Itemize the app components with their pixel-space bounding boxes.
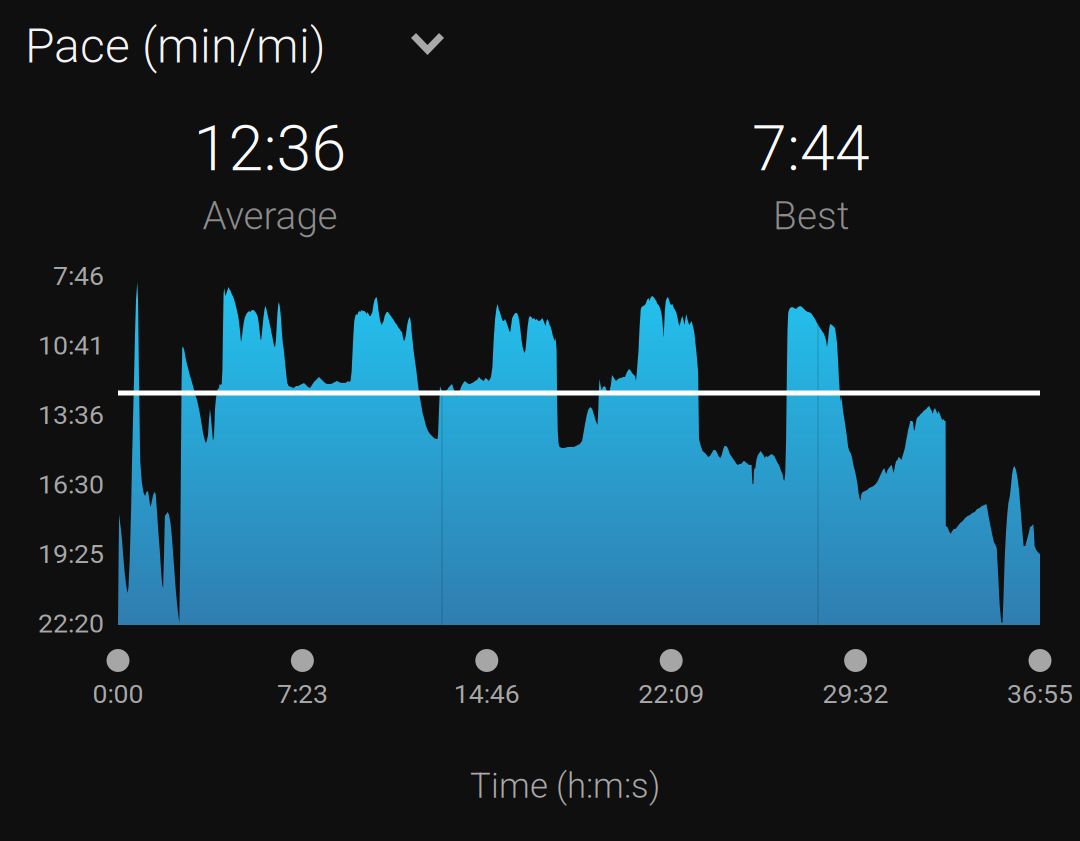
staticText: 13:36 [38, 399, 104, 431]
staticText: 0:00 [92, 678, 143, 710]
staticText: 29:32 [823, 678, 889, 710]
staticText: 36:55 [1007, 678, 1073, 710]
staticText: Pace (min/mi) [25, 18, 326, 74]
staticText: 19:25 [38, 538, 104, 570]
staticText: 14:46 [454, 678, 520, 710]
staticText: 22:09 [638, 678, 704, 710]
staticText: 7:23 [277, 678, 328, 710]
button[interactable]: Pace (min/mi) [0, 0, 1080, 92]
staticText: 7:44 [752, 112, 870, 185]
staticText: 12:36 [193, 112, 346, 185]
staticText: 7:46 [53, 260, 104, 292]
staticText: Average [202, 193, 337, 239]
staticText: 22:20 [38, 608, 104, 639]
staticText: 10:41 [38, 330, 104, 361]
staticText: Time (h:m:s) [470, 766, 660, 806]
staticText: Best [773, 193, 849, 239]
staticText: 16:30 [38, 469, 104, 500]
